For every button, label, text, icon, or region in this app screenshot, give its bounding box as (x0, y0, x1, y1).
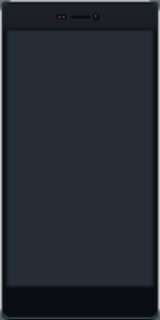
button[interactable]: Phone device preview (0, 0, 160, 320)
